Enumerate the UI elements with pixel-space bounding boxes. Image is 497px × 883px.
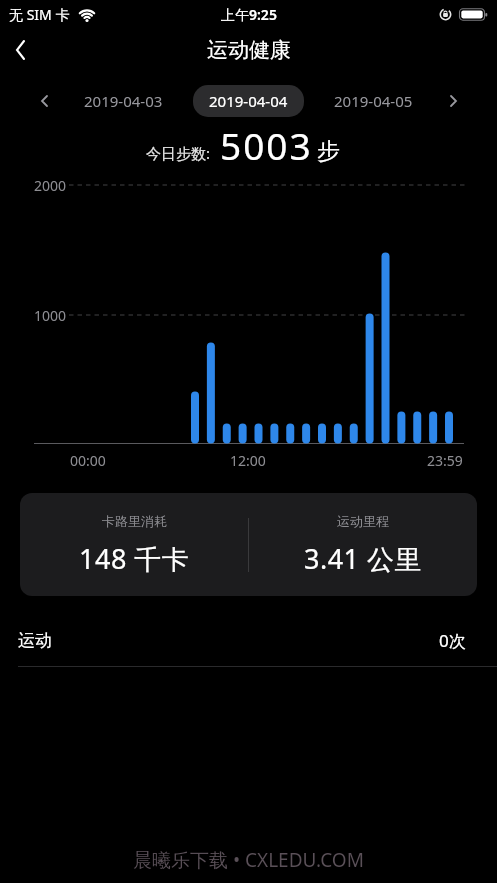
staticText: 1000	[34, 306, 67, 325]
button[interactable]: 2019-04-03	[84, 91, 163, 111]
staticText: 上午9:25	[221, 5, 277, 24]
staticText: 0次	[439, 629, 466, 652]
staticText: 23:59	[427, 451, 463, 470]
staticText: 2000	[34, 176, 67, 195]
staticText: 运动	[18, 630, 52, 651]
staticText: 步	[317, 137, 340, 166]
button[interactable]	[443, 91, 463, 111]
staticText: 运动健康	[207, 37, 291, 63]
staticText: 3.41 公里	[304, 540, 423, 577]
button[interactable]: 卡路里消耗	[20, 493, 477, 596]
staticText: 运动里程	[337, 513, 389, 529]
staticText: 无 SIM 卡	[9, 5, 70, 24]
staticText: 00:00	[70, 451, 106, 470]
staticText: 5003	[220, 120, 313, 170]
button[interactable]: 2019-04-04	[193, 85, 304, 117]
staticText: 2019-04-05	[334, 91, 413, 111]
button[interactable]: 运动	[0, 616, 497, 664]
staticText: 卡路里消耗	[102, 513, 167, 529]
button[interactable]	[34, 91, 54, 111]
staticText: 晨曦乐下载 • CXLEDU.COM	[133, 847, 364, 873]
staticText: 148 千卡	[79, 540, 190, 577]
button[interactable]: 2019-04-05	[334, 91, 413, 111]
staticText: 2019-04-04	[209, 91, 288, 111]
staticText: 今日步数:	[146, 143, 211, 163]
staticText: 2019-04-03	[84, 91, 163, 111]
staticText: 12:00	[230, 451, 266, 470]
button[interactable]	[2, 32, 38, 68]
